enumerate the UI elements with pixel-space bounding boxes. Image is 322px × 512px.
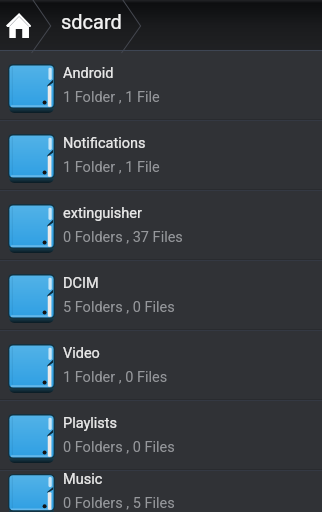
staticText: Music [63, 471, 103, 488]
button[interactable]: Home [0, 0, 37, 51]
staticText: Notifications [63, 135, 146, 152]
staticText: 1 Folder , 1 File [63, 89, 160, 106]
staticText: 0 Folders , 5 Files [63, 495, 175, 512]
button[interactable]: sdcard [45, 0, 130, 51]
staticText: 1 Folder , 1 File [63, 159, 160, 176]
staticText: 5 Folders , 0 Files [63, 299, 175, 316]
button[interactable]: Notifications [0, 121, 322, 189]
staticText: Video [63, 345, 100, 362]
staticText: Android [63, 65, 114, 82]
button[interactable]: Video [0, 331, 322, 399]
staticText: extinguisher [63, 205, 142, 222]
staticText: Playlists [63, 415, 118, 432]
staticText: 1 Folder , 0 Files [63, 369, 168, 386]
button[interactable]: Android [0, 51, 322, 119]
button[interactable]: Music [0, 471, 322, 512]
staticText: sdcard [61, 10, 122, 33]
button[interactable]: Playlists [0, 401, 322, 469]
staticText: DCIM [63, 275, 99, 292]
staticText: 0 Folders , 37 Files [63, 229, 183, 246]
staticText: 0 Folders , 0 Files [63, 439, 175, 456]
button[interactable]: DCIM [0, 261, 322, 329]
button[interactable]: extinguisher [0, 191, 322, 259]
